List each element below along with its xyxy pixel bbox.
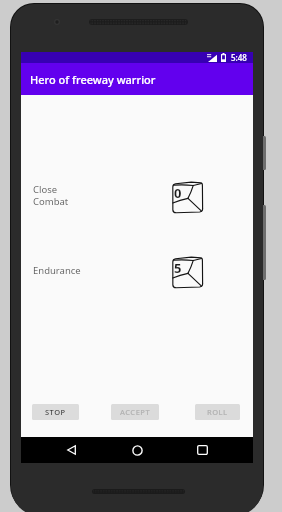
button[interactable]: ROLL <box>195 404 240 420</box>
staticText: ACCEPT <box>120 407 151 417</box>
button[interactable]: Back <box>49 437 94 463</box>
staticText: ROLL <box>207 407 228 417</box>
staticText: 5 <box>174 259 182 277</box>
staticText: STOP <box>45 407 66 417</box>
staticText: Close Combat <box>33 183 69 208</box>
staticText: 0 <box>174 184 182 202</box>
button[interactable]: Endurance <box>33 256 204 289</box>
button[interactable]: Home <box>115 437 160 463</box>
staticText: Hero of freeway warrior <box>30 72 156 87</box>
button[interactable]: Close Combat <box>33 181 204 214</box>
staticText: 5:48 <box>231 52 247 63</box>
button[interactable]: STOP <box>32 404 79 420</box>
staticText: Endurance <box>33 264 81 277</box>
button[interactable]: Hero of freeway warrior <box>21 63 253 95</box>
button[interactable]: ACCEPT <box>111 404 159 420</box>
button[interactable]: Recents <box>180 437 225 463</box>
